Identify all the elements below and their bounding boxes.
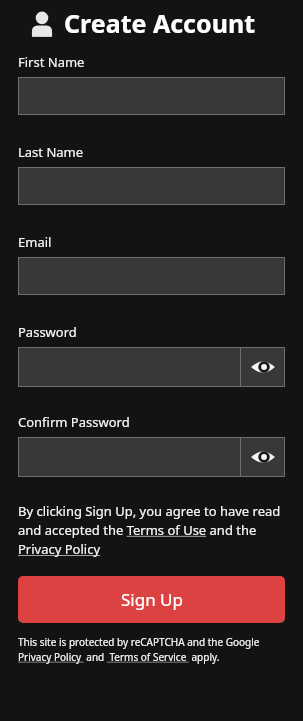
button[interactable]: Show password [241,437,285,477]
button[interactable] [18,347,240,387]
staticText: By clicking Sign Up, you agree to have r… [18,502,285,558]
staticText: Email [18,233,52,251]
button[interactable] [18,77,285,115]
staticText: This site is protected by reCAPTCHA and … [18,635,285,664]
button[interactable] [18,257,285,295]
staticText: Last Name [18,143,84,161]
button[interactable]: Sign Up [18,576,285,623]
staticText: Password [18,323,77,341]
button[interactable] [18,437,240,477]
staticText: Create Account [64,6,255,40]
staticText: First Name [18,53,85,71]
staticText: Sign Up [121,588,183,611]
button[interactable]: Show password [241,347,285,387]
button[interactable] [18,167,285,205]
staticText: Confirm Password [18,413,130,431]
